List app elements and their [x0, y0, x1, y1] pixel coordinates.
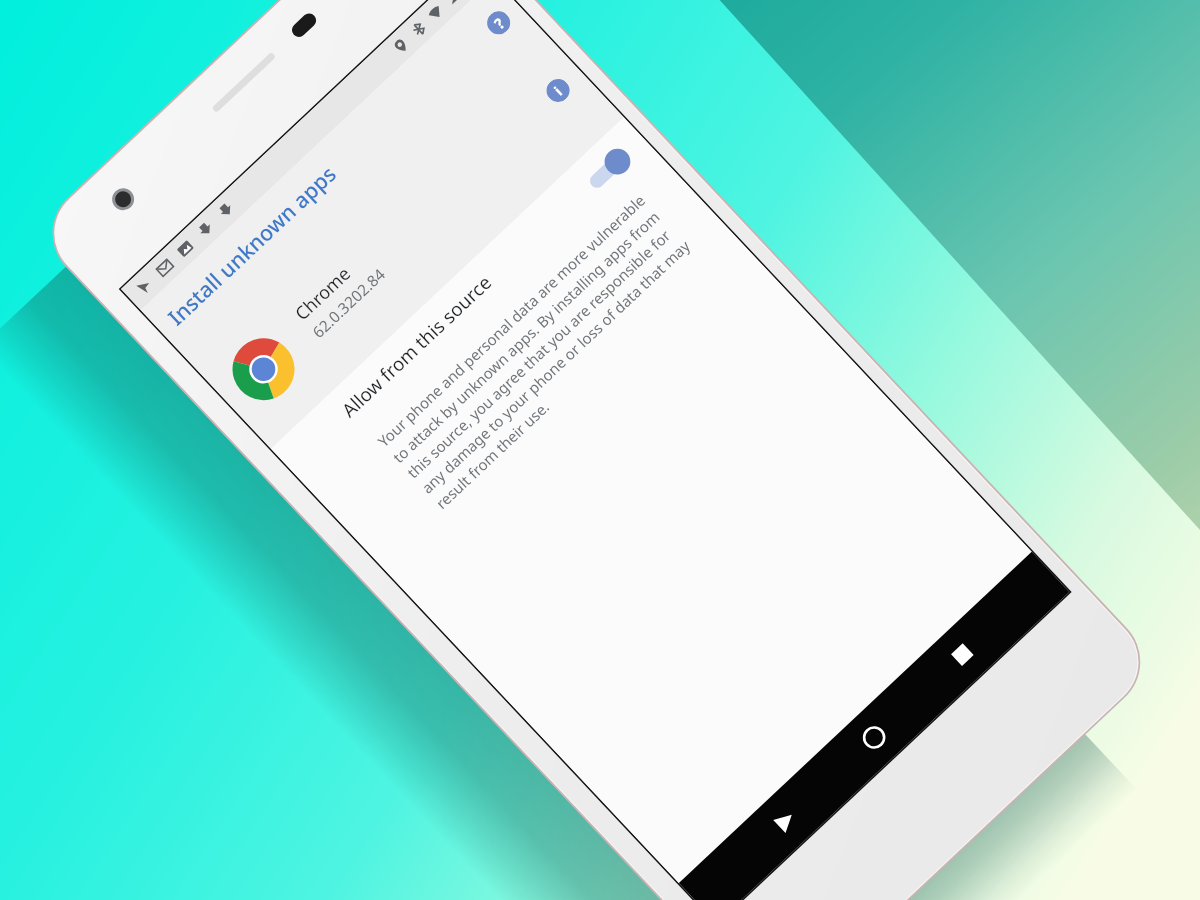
staticText: Allow from this source	[336, 269, 497, 423]
staticText: Your phone and personal data are more vu…	[373, 182, 716, 513]
staticText: 62.0.3202.84	[307, 263, 389, 342]
staticText: Chrome	[289, 261, 356, 326]
button[interactable]: Allow from this source	[271, 117, 754, 587]
button[interactable]: App info	[542, 74, 574, 107]
button[interactable]: Allow from this source toggle	[581, 143, 636, 197]
staticText: Install unknown apps	[161, 159, 342, 331]
staticText: i	[550, 82, 566, 99]
staticText: ?	[490, 13, 509, 33]
button[interactable]: Help	[482, 7, 515, 39]
